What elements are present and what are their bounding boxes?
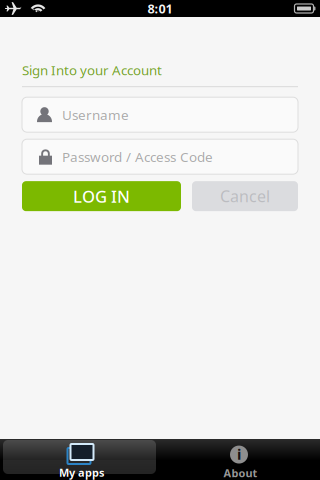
button[interactable]: Password / Access Code — [22, 139, 298, 174]
button[interactable]: LOG IN — [22, 181, 181, 211]
staticText: Sign Into your Account — [22, 61, 162, 79]
staticText: 8:01 — [147, 0, 172, 17]
staticText: My apps — [59, 465, 104, 480]
staticText: Password / Access Code — [62, 147, 213, 166]
staticText: LOG IN — [73, 185, 130, 207]
button[interactable]: Cancel — [192, 181, 298, 211]
button[interactable]: i — [158, 439, 320, 480]
staticText: i — [237, 444, 241, 464]
staticText: Username — [62, 105, 129, 124]
staticText: Cancel — [220, 185, 270, 207]
button[interactable]: Username — [22, 97, 298, 132]
button[interactable]: My apps — [0, 439, 158, 480]
staticText: About — [223, 466, 257, 480]
